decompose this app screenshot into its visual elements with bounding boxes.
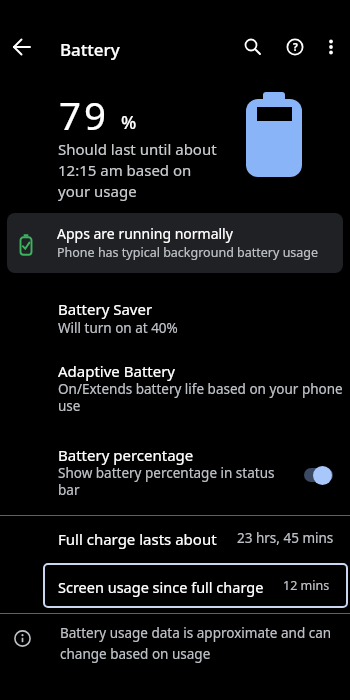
staticText: Apps are running normally xyxy=(57,224,233,243)
staticText: 12 mins xyxy=(283,577,330,594)
staticText: Battery xyxy=(60,38,120,61)
button[interactable]: ? xyxy=(275,27,315,67)
button[interactable] xyxy=(2,27,42,67)
staticText: % xyxy=(121,110,137,135)
staticText: Battery usage data is approximate and ca… xyxy=(60,624,332,663)
staticText: ? xyxy=(293,40,298,54)
button[interactable]: Battery percentage xyxy=(0,437,350,499)
button[interactable]: Adaptive Battery xyxy=(0,352,350,420)
staticText: Should last until about 12:15 am based o… xyxy=(58,139,217,202)
button[interactable] xyxy=(311,27,350,67)
staticText: Screen usage since full charge xyxy=(58,577,264,597)
staticText: Will turn on at 40% xyxy=(58,319,178,337)
button[interactable]: Apps are running normally xyxy=(7,213,343,273)
staticText: Adaptive Battery xyxy=(58,361,176,381)
staticText: 23 hrs, 45 mins xyxy=(237,529,334,547)
staticText: Full charge lasts about xyxy=(58,529,217,549)
button[interactable] xyxy=(233,27,273,67)
staticText: Battery percentage xyxy=(58,445,194,465)
staticText: Battery Saver xyxy=(58,299,153,319)
staticText: On/Extends battery life based on your ph… xyxy=(58,380,343,415)
button[interactable]: Full charge lasts about xyxy=(0,521,350,555)
staticText: 79 xyxy=(59,89,110,141)
button[interactable]: Screen usage since full charge xyxy=(43,563,348,608)
button[interactable]: Battery Saver xyxy=(0,290,350,345)
staticText: Show battery percentage in status bar xyxy=(58,464,275,499)
staticText: Phone has typical background battery usa… xyxy=(57,244,319,261)
